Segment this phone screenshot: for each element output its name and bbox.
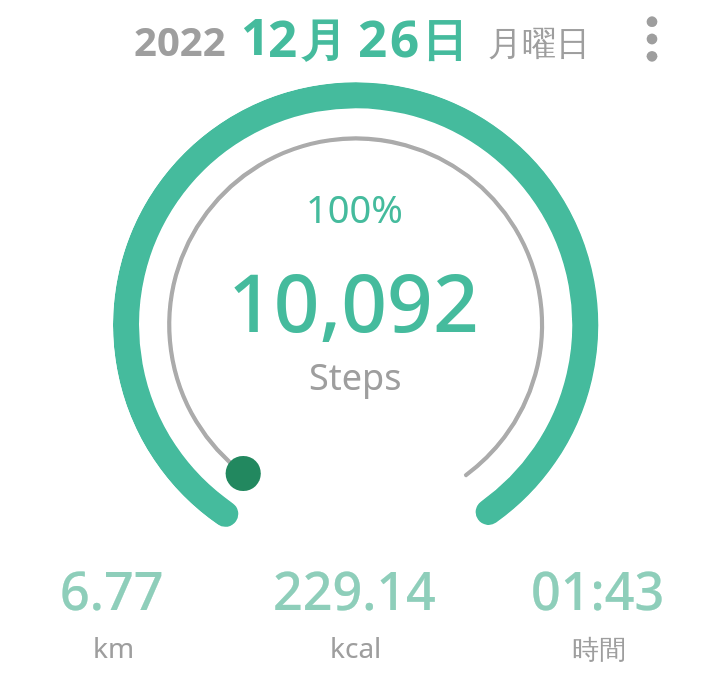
staticText: 月 bbox=[301, 13, 346, 70]
staticText: 229.14 bbox=[273, 554, 436, 625]
staticText: 時間 bbox=[572, 633, 626, 667]
staticText: 2 bbox=[268, 2, 298, 71]
staticText: 日 bbox=[422, 13, 467, 70]
button[interactable]: More options bbox=[624, 11, 680, 67]
staticText: 2022 bbox=[134, 13, 226, 67]
staticText: 6.77 bbox=[60, 554, 164, 625]
staticText: 1 bbox=[241, 2, 270, 70]
staticText: 6 bbox=[390, 2, 420, 71]
button[interactable] bbox=[120, 6, 600, 68]
staticText: km bbox=[93, 628, 135, 666]
staticText: 10,092 bbox=[228, 246, 479, 355]
button[interactable]: 229.14 bbox=[237, 548, 474, 675]
button[interactable]: 10,092 steps, 100 percent of daily goal bbox=[113, 82, 599, 568]
staticText: 2 bbox=[358, 2, 388, 71]
staticText: Steps bbox=[309, 352, 402, 401]
button[interactable]: 01:43 bbox=[474, 548, 712, 675]
staticText: 01:43 bbox=[531, 554, 665, 625]
staticText: 100% bbox=[306, 182, 403, 234]
staticText: kcal bbox=[330, 628, 382, 666]
staticText: 月曜日 bbox=[488, 22, 590, 65]
button[interactable]: 6.77 bbox=[0, 548, 237, 675]
